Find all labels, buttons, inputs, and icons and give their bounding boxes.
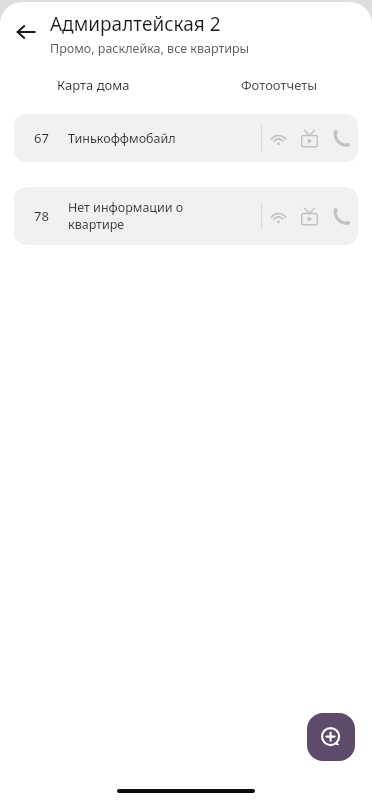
button[interactable]: Интернет: [262, 121, 294, 155]
button[interactable]: Телевидение: [294, 199, 324, 233]
button[interactable]: 67: [14, 114, 358, 162]
staticText: Нет информации о: [68, 199, 184, 216]
button[interactable]: Добавить объект: [307, 713, 355, 761]
staticText: Фотоотчеты: [241, 76, 318, 94]
staticText: квартире: [68, 216, 125, 233]
button[interactable]: Телефония: [324, 199, 358, 233]
staticText: Адмиралтейская 2: [50, 11, 221, 37]
staticText: 78: [34, 207, 49, 225]
staticText: Карта дома: [57, 76, 130, 94]
button[interactable]: Интернет: [262, 199, 294, 233]
button[interactable]: Карта дома: [0, 60, 186, 105]
button[interactable]: 78: [14, 187, 358, 245]
staticText: Промо, расклейка, все квартиры: [50, 40, 250, 57]
staticText: Тинькоффмобайл: [68, 130, 176, 147]
staticText: 67: [34, 129, 49, 147]
button[interactable]: Фотоотчеты: [186, 60, 372, 105]
button[interactable]: Назад: [6, 12, 46, 52]
button[interactable]: Телевидение: [294, 121, 324, 155]
button[interactable]: Телефония: [324, 121, 358, 155]
